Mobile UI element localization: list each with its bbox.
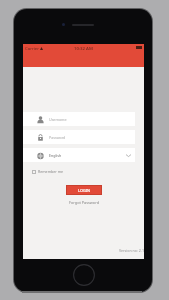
button[interactable]: Username: [23, 112, 135, 126]
button[interactable]: Remember me: [32, 168, 64, 175]
button[interactable]: Password: [23, 130, 135, 144]
staticText: Carrier: [25, 45, 39, 51]
button[interactable]: LOGIN: [67, 186, 101, 194]
staticText: 10:32 AM: [74, 45, 93, 51]
staticText: Username: [49, 117, 67, 122]
button[interactable]: Forgot Password: [69, 200, 99, 205]
staticText: Remember me: [38, 169, 64, 174]
staticText: English: [49, 153, 62, 158]
button[interactable]: English: [23, 148, 135, 162]
staticText: LOGIN: [78, 188, 90, 193]
staticText: Version no: 2.1: [119, 248, 144, 253]
staticText: Password: [49, 135, 66, 140]
